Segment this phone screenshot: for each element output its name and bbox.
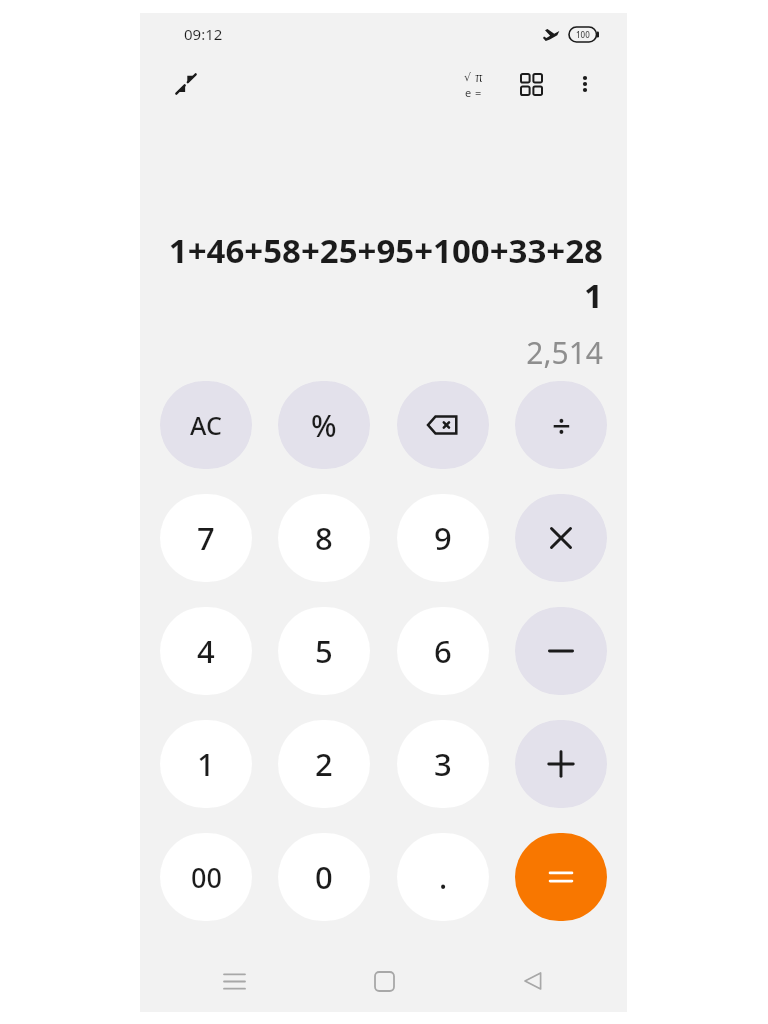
staticText: 5 [315,630,333,672]
button[interactable]: Collapse [164,62,208,106]
button[interactable]: Converters [509,62,553,106]
staticText: √ [464,71,472,84]
button[interactable]: 00 [160,833,252,921]
button[interactable]: Backspace [397,381,489,469]
button[interactable]: 5 [278,607,370,695]
staticText: 2,514 [526,332,603,373]
staticText: 7 [197,517,215,559]
button[interactable]: Scientific mode [451,62,495,106]
button[interactable]: 7 [160,494,252,582]
staticText: 09:12 [184,24,223,44]
button[interactable]: 3 [397,720,489,808]
staticText: e [465,85,472,100]
button[interactable]: Home [360,957,408,1005]
button[interactable]: Equals [515,833,607,921]
button[interactable]: 6 [397,607,489,695]
button[interactable]: % [278,381,370,469]
staticText: 0 [315,856,333,898]
staticText: 3 [434,743,452,785]
staticText: . [439,857,448,898]
staticText: 6 [434,630,452,672]
button[interactable]: More options [563,62,607,106]
button[interactable]: ÷ [515,381,607,469]
button[interactable]: 0 [278,833,370,921]
staticText: 1+46+58+25+95+100+33+281 [164,228,603,318]
staticText: π [475,69,483,85]
button[interactable]: . [397,833,489,921]
staticText: 100 [576,29,590,40]
button[interactable]: 8 [278,494,370,582]
button[interactable]: Plus [515,720,607,808]
staticText: 9 [434,517,452,559]
button[interactable]: 4 [160,607,252,695]
button[interactable]: Recent apps [210,957,258,1005]
staticText: 4 [197,630,215,672]
staticText: = [475,85,482,100]
staticText: % [311,405,337,446]
button[interactable]: AC [160,381,252,469]
staticText: AC [190,408,222,442]
button[interactable]: 9 [397,494,489,582]
staticText: 2 [315,743,333,785]
staticText: 00 [191,859,222,896]
staticText: 8 [315,517,333,559]
button[interactable]: 1 [160,720,252,808]
staticText: 1 [197,743,215,785]
button[interactable]: Multiply [515,494,607,582]
button[interactable]: Back [509,957,557,1005]
staticText: ÷ [552,403,571,448]
button[interactable]: 2 [278,720,370,808]
button[interactable]: Minus [515,607,607,695]
